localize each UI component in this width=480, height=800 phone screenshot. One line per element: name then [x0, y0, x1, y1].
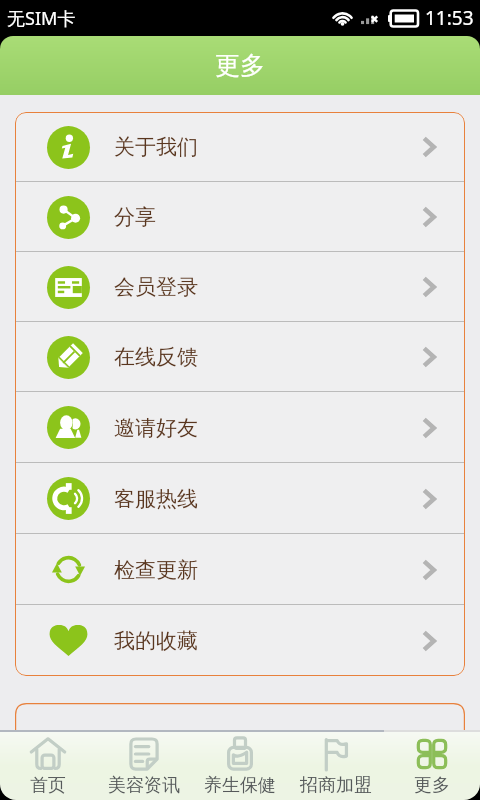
staticText: 养生保健 [204, 774, 276, 797]
button[interactable]: 客服热线 [15, 463, 465, 534]
staticText: 客服热线 [114, 486, 198, 512]
button[interactable]: 更多 [384, 732, 480, 800]
staticText: 更多 [414, 774, 450, 797]
staticText: 关于我们 [114, 134, 198, 160]
button[interactable]: 招商加盟 [288, 732, 384, 800]
button[interactable]: 首页 [0, 732, 96, 800]
staticText: 检查更新 [114, 557, 198, 583]
button[interactable]: 分享 [15, 182, 465, 252]
staticText: 在线反馈 [114, 344, 198, 370]
button[interactable]: 会员登录 [15, 252, 465, 322]
staticText: 我的收藏 [114, 628, 198, 654]
staticText: 首页 [30, 774, 66, 797]
button[interactable]: 邀请好友 [15, 392, 465, 463]
staticText: 招商加盟 [300, 774, 372, 797]
button[interactable]: 养生保健 [192, 732, 288, 800]
staticText: 无SIM卡 [7, 6, 76, 31]
button[interactable]: 关于我们 [15, 112, 465, 182]
staticText: 美容资讯 [108, 774, 180, 797]
staticText: 会员登录 [114, 274, 198, 300]
staticText: 11:53 [425, 5, 474, 31]
staticText: 更多 [215, 50, 265, 81]
staticText: 邀请好友 [114, 415, 198, 441]
button[interactable]: 我的收藏 [15, 605, 465, 676]
button[interactable]: 在线反馈 [15, 322, 465, 392]
button[interactable]: 检查更新 [15, 534, 465, 605]
button[interactable]: 美容资讯 [96, 732, 192, 800]
staticText: 分享 [114, 204, 156, 230]
